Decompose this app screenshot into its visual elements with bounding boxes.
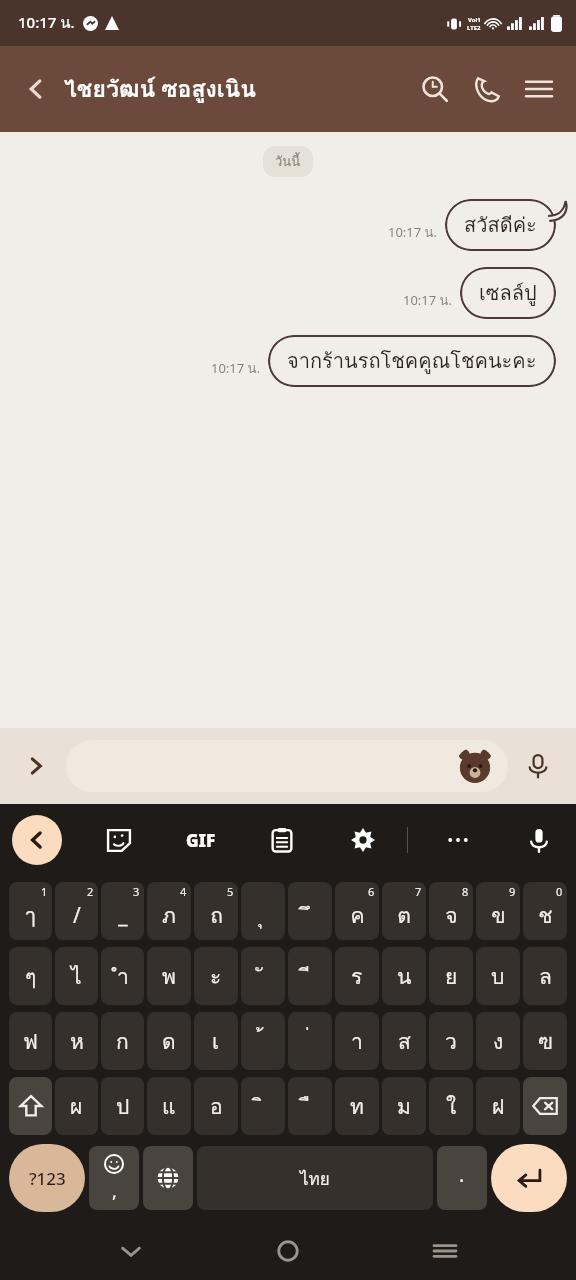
button[interactable]: น [382, 947, 426, 1005]
button[interactable]: Back [14, 67, 58, 111]
button[interactable]: ฃ [523, 1012, 567, 1070]
button[interactable]: 7 [382, 882, 426, 940]
staticText: / [73, 901, 81, 930]
button[interactable]: Sticker [94, 815, 144, 865]
staticText: แ [162, 1090, 176, 1123]
staticText: ๆ [25, 960, 37, 993]
staticText: 8 [462, 884, 469, 899]
staticText: ถ [210, 899, 223, 932]
button[interactable]: ม [382, 1077, 426, 1135]
button[interactable]: ฝ [476, 1077, 520, 1135]
staticText: ข [491, 899, 506, 932]
button[interactable]: Menu [516, 66, 562, 112]
button[interactable]: 5 [194, 882, 238, 940]
button[interactable]: 9 [476, 882, 520, 940]
button[interactable]: . [437, 1146, 487, 1210]
staticText: ม [397, 1090, 411, 1123]
staticText: . [459, 1161, 465, 1188]
button[interactable]: ป [101, 1077, 144, 1135]
button[interactable]: ำ [101, 947, 144, 1005]
button[interactable]: แ [147, 1077, 191, 1135]
button[interactable]: GIF [176, 815, 226, 865]
button[interactable]: Change language [143, 1146, 193, 1210]
button[interactable]: ท [335, 1077, 379, 1135]
button[interactable]: Clipboard [257, 815, 307, 865]
button[interactable]: อ [194, 1077, 238, 1135]
staticText: ล [539, 960, 552, 993]
button[interactable]: ย [429, 947, 473, 1005]
button[interactable]: ใ [429, 1077, 473, 1135]
button[interactable]: เ [194, 1012, 238, 1070]
button[interactable]: Hide keyboard [105, 1225, 157, 1277]
button[interactable]: 8 [429, 882, 473, 940]
button[interactable]: ?123 [9, 1144, 85, 1212]
button[interactable]: Settings [338, 815, 388, 865]
button[interactable]: Home [262, 1225, 314, 1277]
button[interactable]: ผ [55, 1077, 98, 1135]
button[interactable]: Search [412, 66, 458, 112]
button[interactable]: า [335, 1012, 379, 1070]
button[interactable]: Expand [14, 744, 58, 788]
button[interactable]: Recent apps [419, 1225, 471, 1277]
button[interactable]: Collapse [12, 815, 62, 865]
staticText: 4 [180, 884, 187, 899]
staticText: ช [538, 899, 553, 932]
button[interactable]: ล [523, 947, 567, 1005]
button[interactable]: พ [147, 947, 191, 1005]
button[interactable]: Enter [491, 1144, 567, 1212]
button[interactable]: ฟ [9, 1012, 52, 1070]
button[interactable]: ไทย [197, 1146, 433, 1210]
button[interactable]: 3 [101, 882, 144, 940]
staticText: ไ [71, 960, 82, 993]
staticText: ผ [70, 1090, 83, 1123]
button[interactable]: ั [241, 947, 285, 1005]
button[interactable]: Call [464, 66, 510, 112]
staticText: ต [397, 899, 411, 932]
staticText: ห [70, 1025, 84, 1058]
button[interactable]: ะ [194, 947, 238, 1005]
button[interactable]: More options [433, 815, 483, 865]
button[interactable]: จากร้านรถโชคคูณโชคนะคะ [268, 335, 556, 387]
staticText: 3 [133, 884, 140, 899]
staticText: ะ [210, 960, 222, 993]
button[interactable]: ส [382, 1012, 426, 1070]
button[interactable]: 4 [147, 882, 191, 940]
button[interactable]: ิ [241, 1077, 285, 1135]
button[interactable]: ื [288, 1077, 332, 1135]
staticText: Vol1 [468, 16, 481, 24]
button[interactable]: ี [288, 947, 332, 1005]
button[interactable]: ว [429, 1012, 473, 1070]
staticText: ฝ [492, 1090, 505, 1123]
button[interactable]: Voice input [514, 815, 564, 865]
button[interactable]: ่ [288, 1012, 332, 1070]
button[interactable]: ้ [241, 1012, 285, 1070]
button[interactable]: เซลล์ปู [460, 267, 556, 319]
button[interactable]: ด [147, 1012, 191, 1070]
button[interactable]: 6 [335, 882, 379, 940]
button[interactable]: ห [55, 1012, 98, 1070]
button[interactable]: Shift [9, 1077, 52, 1135]
button[interactable]: ึ [288, 882, 332, 940]
staticText: 10:17 น. [211, 358, 260, 379]
button[interactable]: 2 [55, 882, 98, 940]
button[interactable]: ร [335, 947, 379, 1005]
button[interactable]: Voice message [514, 742, 562, 790]
button[interactable]: สวัสดีค่ะ [445, 199, 556, 251]
button[interactable]: 0 [523, 882, 567, 940]
button[interactable]: Stickers [456, 747, 494, 785]
button[interactable]: ๆ [9, 947, 52, 1005]
button[interactable]: 1 [9, 882, 52, 940]
button[interactable]: Emoji [89, 1146, 139, 1210]
staticText: 1 [41, 884, 48, 899]
button[interactable]: ก [101, 1012, 144, 1070]
button[interactable]: ไ [55, 947, 98, 1005]
staticText: วันนี้ [275, 151, 301, 172]
staticText: 0 [556, 884, 563, 899]
staticText: า [351, 1025, 363, 1058]
staticText: น [397, 960, 412, 993]
button[interactable]: บ [476, 947, 520, 1005]
button[interactable]: ุ [241, 882, 285, 940]
button[interactable]: ง [476, 1012, 520, 1070]
button[interactable]: Stickers [66, 740, 508, 792]
button[interactable]: Backspace [523, 1077, 567, 1135]
